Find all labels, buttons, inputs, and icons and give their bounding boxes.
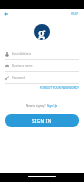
staticText: SIGN IN [32,118,52,124]
staticText: FORGOT YOUR PASSWORD? [40,86,79,90]
staticText: New to signzy? [26,104,47,108]
staticText: Sign Up [47,104,58,108]
button[interactable]: HELP [66,9,84,18]
staticText: Password [12,76,26,80]
button[interactable]: SIGN IN [5,114,79,127]
button[interactable]: Sign Up [47,104,58,108]
button[interactable]: Password [5,72,79,84]
button[interactable]: Email Address [5,48,79,60]
staticText: Email Address [12,52,32,56]
button[interactable]: FORGOT YOUR PASSWORD? [40,86,79,90]
button[interactable]: Back [1,9,10,18]
staticText: g [38,24,46,40]
staticText: HELP [71,12,79,16]
button[interactable]: Business name [5,60,79,72]
staticText: Business name [12,64,33,68]
